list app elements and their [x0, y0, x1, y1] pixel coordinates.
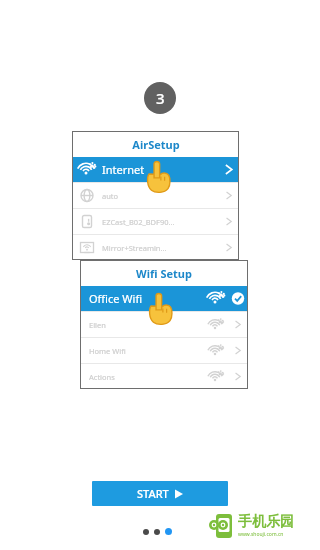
staticText: Wifi Setup — [136, 266, 192, 281]
button[interactable]: auto — [72, 183, 239, 208]
button[interactable]: START — [92, 481, 228, 506]
button[interactable]: Actions — [80, 364, 248, 389]
staticText: Internet — [102, 162, 219, 177]
staticText: START — [137, 486, 169, 501]
staticText: auto — [102, 191, 219, 201]
staticText: Mirror+Streamin... — [102, 243, 219, 253]
button[interactable]: Mirror+Streamin... — [72, 235, 239, 260]
staticText: 手机乐园 — [238, 513, 294, 531]
button[interactable] — [165, 528, 172, 535]
button[interactable]: Home Wifi — [80, 338, 248, 363]
button[interactable] — [143, 529, 149, 535]
staticText: www.shouji.com.cn — [238, 531, 284, 538]
button[interactable]: EZCast_B02_BDF90... — [72, 209, 239, 234]
button[interactable]: Office Wifi — [80, 286, 248, 311]
staticText: Home Wifi — [89, 346, 204, 356]
staticText: 3 — [156, 88, 165, 108]
button[interactable]: Internet — [72, 157, 239, 182]
staticText: AirSetup — [132, 137, 180, 152]
staticText: Office Wifi — [89, 291, 204, 306]
staticText: EZCast_B02_BDF90... — [102, 217, 219, 227]
button[interactable] — [154, 529, 160, 535]
staticText: Actions — [89, 372, 204, 382]
staticText: Ellen — [89, 320, 204, 330]
button[interactable]: Ellen — [80, 312, 248, 337]
